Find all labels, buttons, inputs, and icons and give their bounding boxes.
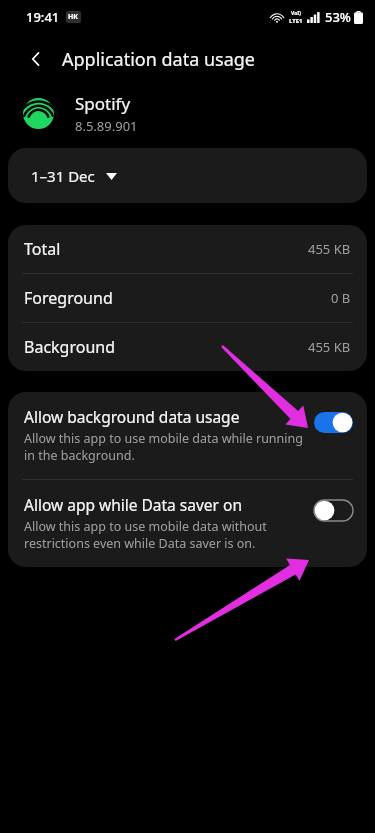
staticText: 1–31 Dec <box>31 166 95 186</box>
staticText: VoI) <box>291 10 301 17</box>
button[interactable]: Total <box>8 225 367 273</box>
button[interactable]: Back <box>18 41 54 77</box>
staticText: LTE1 <box>289 17 303 25</box>
staticText: 19:41 <box>26 8 60 26</box>
button[interactable]: 1–31 Dec <box>8 148 367 203</box>
staticText: 455 KB <box>308 240 351 258</box>
staticText: HK <box>68 12 79 22</box>
staticText: Allow app while Data saver on <box>24 494 242 515</box>
staticText: Total <box>24 238 61 260</box>
button[interactable]: Foreground <box>8 274 367 322</box>
staticText: Allow this app to use mobile data withou… <box>24 518 304 551</box>
staticText: Foreground <box>24 287 113 309</box>
button[interactable]: Toggle off <box>314 500 353 521</box>
button[interactable]: Toggle on <box>314 412 353 433</box>
button[interactable]: Allow background data usage <box>8 392 367 479</box>
button[interactable]: Allow app while Data saver on <box>8 480 367 567</box>
staticText: Allow this app to use mobile data while … <box>24 430 304 463</box>
staticText: 8.5.89.901 <box>75 117 138 135</box>
staticText: 455 KB <box>308 338 351 356</box>
staticText: Spotify <box>75 92 131 115</box>
staticText: 0 B <box>331 289 351 307</box>
staticText: 53% <box>325 8 351 26</box>
button[interactable]: Background <box>8 323 367 371</box>
staticText: Application data usage <box>62 47 256 72</box>
staticText: Allow background data usage <box>24 406 240 427</box>
staticText: Background <box>24 336 116 358</box>
